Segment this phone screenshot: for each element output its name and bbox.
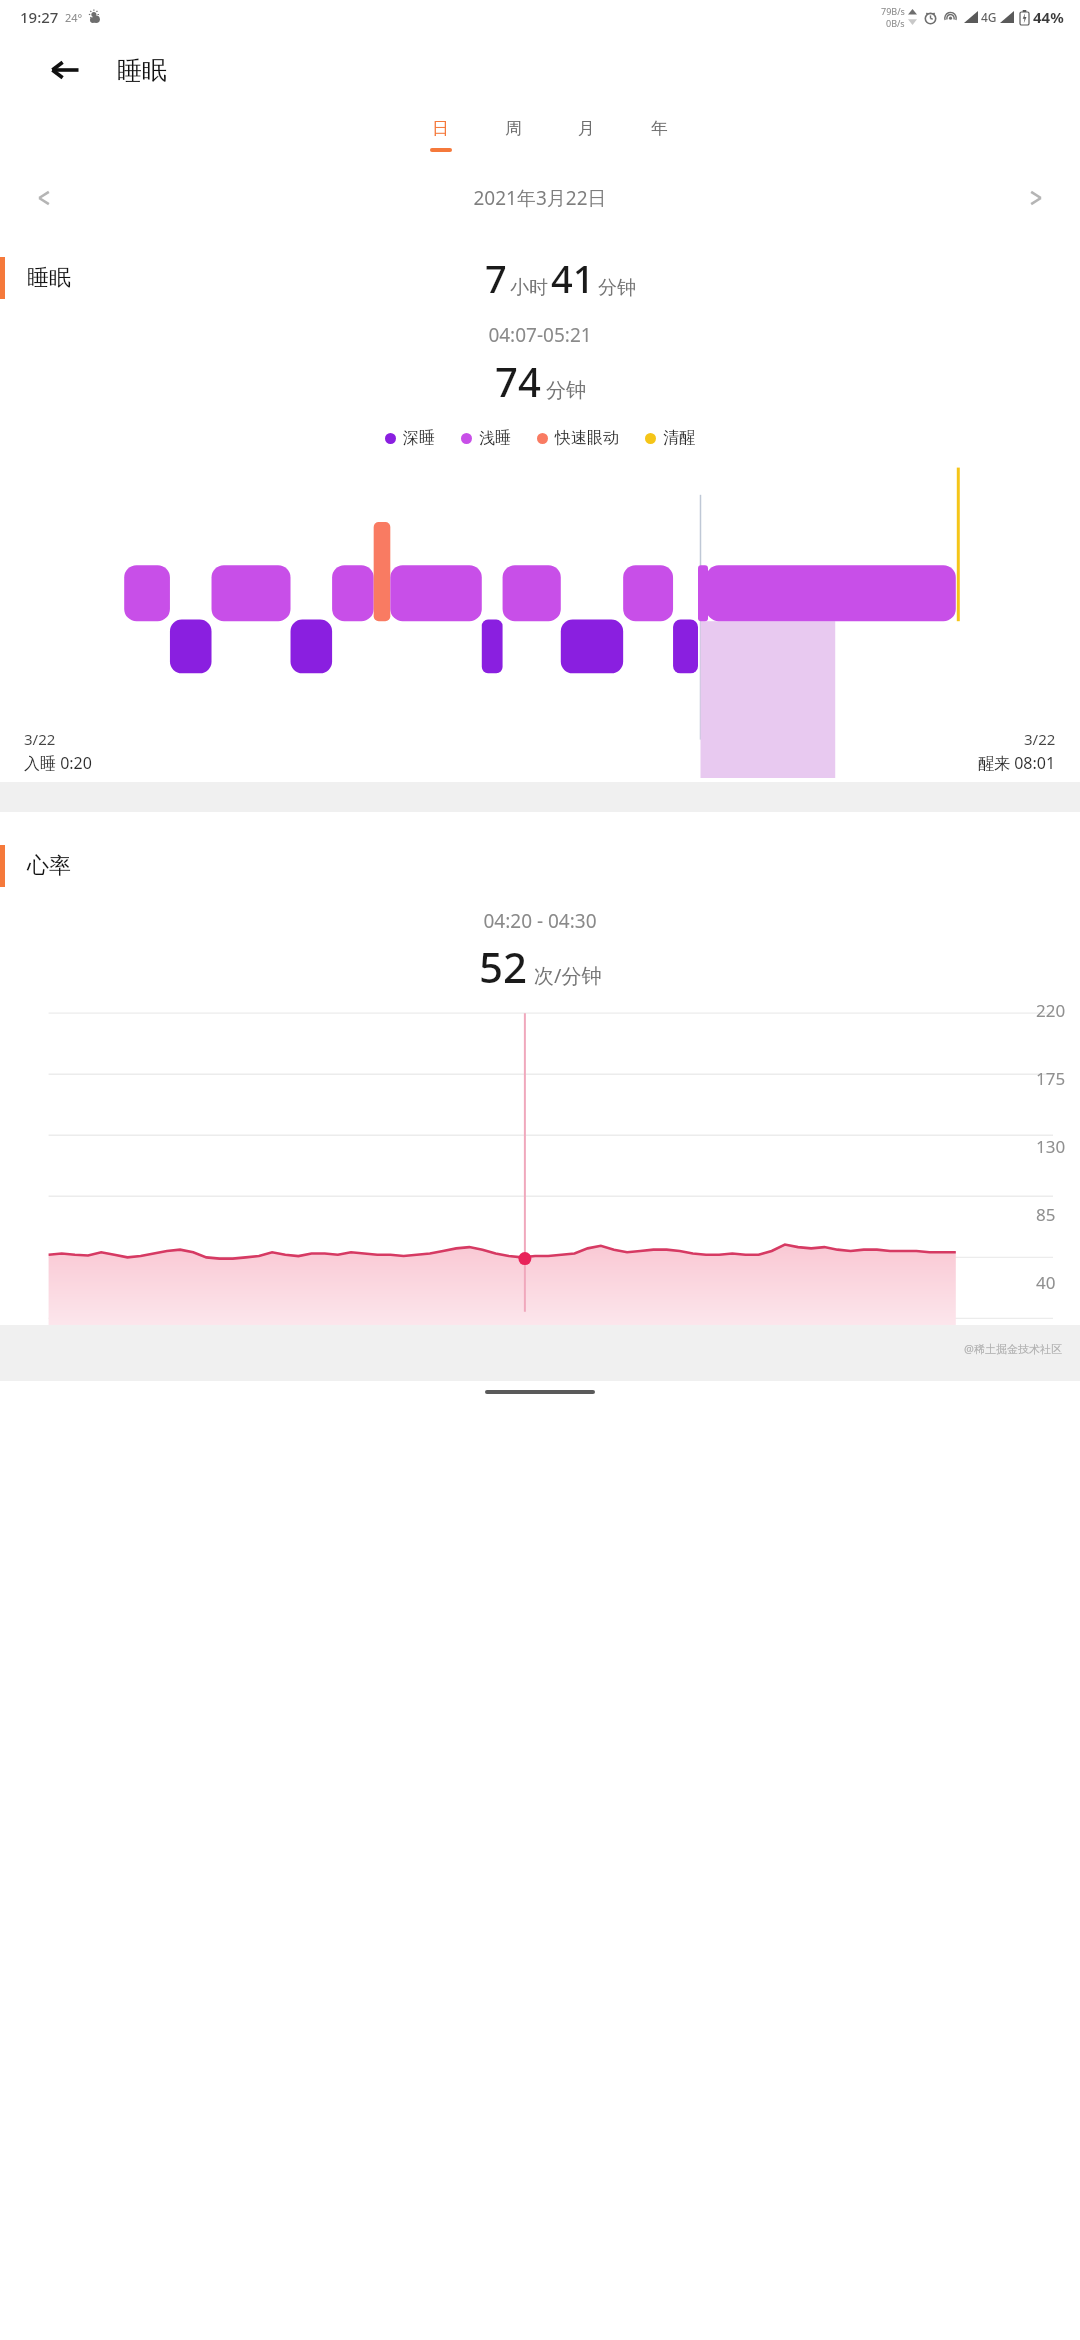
- staticText: 周: [505, 118, 522, 139]
- button[interactable]: 日: [404, 106, 477, 168]
- button[interactable]: 周: [477, 106, 550, 168]
- staticText: 睡眠: [117, 55, 167, 86]
- staticText: 睡眠: [27, 264, 71, 292]
- staticText: 年: [651, 118, 668, 139]
- staticText: 04:20 - 04:30: [0, 908, 1080, 934]
- staticText: 4G: [981, 9, 997, 25]
- staticText: 3/22: [24, 729, 56, 749]
- button[interactable]: Back: [44, 49, 86, 91]
- staticText: 175: [1036, 1067, 1066, 1090]
- staticText: 40: [1036, 1271, 1056, 1294]
- staticText: 2021年3月22日: [66, 185, 1014, 211]
- staticText: 19:27: [20, 7, 59, 27]
- staticText: 小时: [510, 276, 548, 300]
- staticText: @稀土掘金技术社区: [964, 1341, 1062, 1356]
- staticText: 04:07-05:21: [0, 322, 1080, 348]
- staticText: 清醒: [663, 428, 695, 448]
- staticText: 220: [1036, 999, 1066, 1022]
- button[interactable]: 月: [550, 106, 623, 168]
- staticText: 深睡: [403, 428, 435, 448]
- staticText: 7: [485, 252, 507, 304]
- staticText: 41: [551, 252, 595, 304]
- staticText: 分钟: [546, 378, 586, 403]
- staticText: 52: [479, 938, 528, 995]
- button[interactable]: 年: [623, 106, 696, 168]
- staticText: 85: [1036, 1203, 1056, 1226]
- staticText: 44%: [1033, 7, 1064, 27]
- staticText: 月: [578, 118, 595, 139]
- staticText: 24°: [65, 10, 83, 25]
- staticText: 日: [432, 118, 449, 139]
- staticText: 次/分钟: [534, 962, 602, 989]
- staticText: 130: [1036, 1135, 1066, 1158]
- staticText: 79B/s: [881, 5, 905, 17]
- staticText: 快速眼动: [555, 428, 619, 448]
- staticText: 醒来 08:01: [978, 752, 1056, 774]
- staticText: 入睡 0:20: [24, 752, 92, 774]
- staticText: 心率: [27, 852, 71, 880]
- button[interactable]: Previous day: [22, 176, 66, 220]
- staticText: 74: [495, 354, 541, 408]
- button[interactable]: Next day: [1014, 176, 1058, 220]
- staticText: 浅睡: [479, 428, 511, 448]
- staticText: 分钟: [598, 276, 636, 300]
- staticText: 3/22: [1024, 729, 1056, 749]
- staticText: 0B/s: [886, 17, 905, 29]
